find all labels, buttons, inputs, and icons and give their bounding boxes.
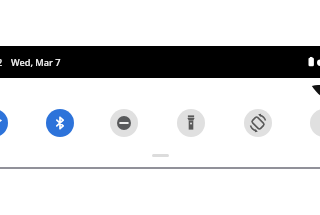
button[interactable]: Bluetooth: [46, 109, 74, 137]
button[interactable]: Flashlight: [177, 109, 205, 137]
button[interactable]: Internet: [0, 109, 8, 137]
button[interactable]: Drag handle: [152, 154, 169, 157]
button[interactable]: More: [310, 109, 320, 137]
button[interactable]: Auto rotate: [244, 109, 272, 137]
staticText: Wed, Mar 7: [11, 56, 61, 69]
other: Battery: [306, 56, 316, 68]
button[interactable]: Do Not Disturb: [110, 109, 138, 137]
staticText: 2: [0, 56, 3, 69]
